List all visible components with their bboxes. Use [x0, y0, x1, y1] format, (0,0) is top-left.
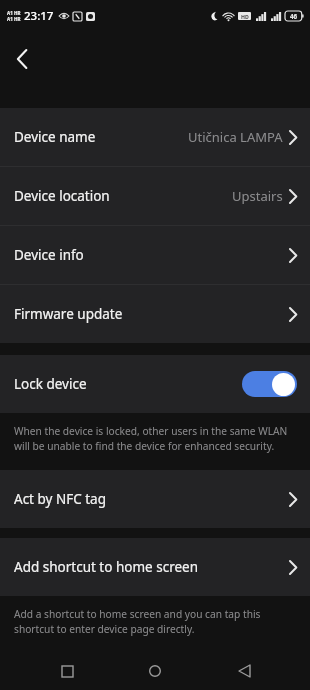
staticText: Device location	[14, 187, 110, 205]
staticText: Utičnica LAMPA	[188, 128, 283, 146]
button[interactable]: Home	[133, 652, 177, 690]
button[interactable]: Device location	[0, 167, 310, 225]
staticText: Firmware update	[14, 305, 123, 323]
staticText: Act by NFC tag	[14, 490, 106, 508]
button[interactable]: Back	[0, 37, 44, 81]
button[interactable]: Act by NFC tag	[0, 470, 310, 528]
button[interactable]: Back	[222, 652, 266, 690]
staticText: 46	[290, 12, 298, 20]
staticText: 23:17	[24, 8, 54, 24]
staticText: A1 HR	[7, 10, 21, 16]
button[interactable]: Lock device toggle	[242, 371, 297, 397]
staticText: A1 HR	[7, 16, 21, 22]
button[interactable]: Device name	[0, 108, 310, 166]
button[interactable]: Add shortcut to home screen	[0, 538, 310, 596]
staticText: When the device is locked, other users i…	[14, 424, 288, 453]
staticText: Device info	[14, 246, 84, 264]
staticText: Add shortcut to home screen	[14, 558, 199, 576]
staticText: Device name	[14, 128, 96, 146]
button[interactable]: Lock device	[0, 355, 310, 413]
staticText: Upstairs	[232, 187, 283, 205]
button[interactable]: Device info	[0, 226, 310, 284]
button[interactable]: Firmware update	[0, 285, 310, 343]
staticText: Lock device	[14, 375, 87, 393]
staticText: Add a shortcut to home screen and you ca…	[14, 607, 261, 636]
button[interactable]: Recents	[45, 652, 89, 690]
staticText: HD	[241, 13, 249, 20]
